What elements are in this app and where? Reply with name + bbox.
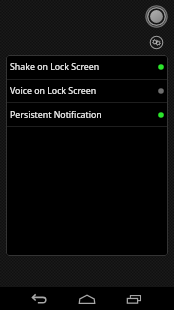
- button[interactable]: Voice on Lock Screen: [6, 80, 168, 102]
- button[interactable]: Record: [145, 5, 168, 28]
- button[interactable]: Recent apps: [111, 287, 157, 310]
- staticText: Shake on Lock Screen: [10, 61, 100, 73]
- button[interactable]: Back: [17, 287, 63, 310]
- button[interactable]: Home: [64, 287, 110, 310]
- staticText: Voice on Lock Screen: [10, 85, 97, 97]
- button[interactable]: Persistent Notification: [6, 103, 168, 126]
- button[interactable]: Settings: [149, 35, 164, 50]
- button[interactable]: Shake on Lock Screen: [6, 55, 168, 79]
- staticText: Persistent Notification: [10, 109, 102, 121]
